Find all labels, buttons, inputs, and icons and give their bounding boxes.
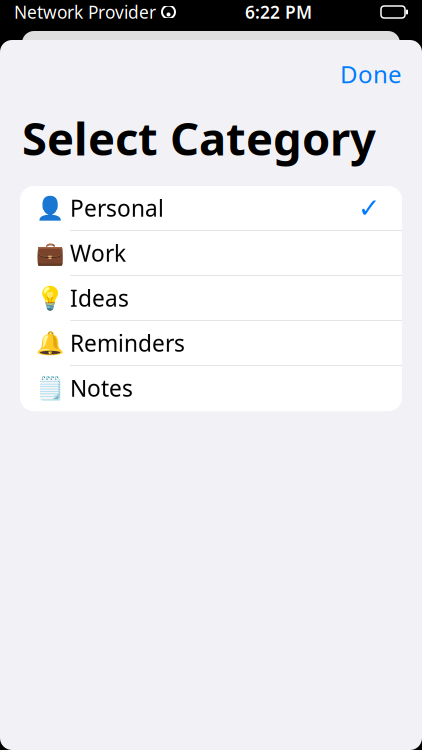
button[interactable]: 🗒️	[20, 366, 402, 411]
staticText: Personal	[70, 193, 164, 223]
staticText: Done	[340, 58, 402, 90]
staticText: Notes	[70, 373, 133, 403]
staticText: 💼	[36, 240, 64, 266]
staticText: 🔔	[36, 330, 64, 356]
button[interactable]: 🔔	[20, 321, 402, 366]
staticText: Network Provider	[14, 0, 156, 23]
staticText: Work	[70, 238, 126, 268]
button[interactable]: 👤	[20, 186, 402, 231]
staticText: ✓	[358, 193, 380, 223]
staticText: 👤	[36, 195, 64, 221]
button[interactable]: 💡	[20, 276, 402, 321]
staticText: Reminders	[70, 328, 185, 358]
staticText: 💡	[36, 285, 64, 311]
staticText: 6:22 PM	[245, 0, 312, 23]
staticText: Select Category	[22, 108, 376, 168]
button[interactable]: Done	[332, 52, 410, 96]
staticText: Ideas	[70, 283, 129, 313]
staticText: 🗒️	[36, 375, 64, 401]
button[interactable]: 💼	[20, 231, 402, 276]
